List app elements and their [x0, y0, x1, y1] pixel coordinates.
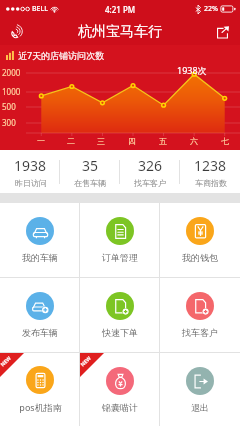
staticText: 326 [138, 156, 163, 175]
button[interactable]: Call [3, 19, 29, 45]
staticText: 三 [97, 136, 105, 146]
staticText: 1938 [14, 156, 47, 175]
staticText: 500 [2, 101, 16, 112]
staticText: 锦囊喵计 [102, 402, 138, 413]
button[interactable]: 找车客户 [160, 278, 240, 352]
button[interactable]: 发布车辆 [0, 278, 80, 352]
staticText: 我的钱包 [182, 252, 218, 263]
staticText: 订单管理 [102, 252, 138, 263]
button[interactable]: 订单管理 [80, 203, 160, 277]
staticText: 找车客户 [182, 327, 218, 338]
staticText: 找车客户 [134, 178, 166, 188]
staticText: 35 [82, 156, 99, 175]
button[interactable]: 快速下单 [80, 278, 160, 352]
staticText: 发布车辆 [22, 327, 58, 338]
staticText: 1000 [2, 86, 21, 97]
staticText: 退出 [191, 402, 209, 413]
staticText: pos机指南 [19, 401, 62, 413]
staticText: NEW [79, 355, 93, 368]
staticText: 五 [159, 136, 167, 146]
button[interactable]: 326 [120, 150, 180, 193]
button[interactable]: 1238 [180, 150, 240, 193]
staticText: 1938次 [177, 64, 207, 76]
staticText: 昨日访问 [15, 178, 47, 188]
staticText: 300 [2, 117, 16, 128]
staticText: 近7天的店铺访问次数 [18, 49, 105, 61]
staticText: 六 [190, 136, 198, 146]
staticText: NEW [0, 355, 13, 368]
staticText: 4:21 PM [105, 4, 136, 15]
staticText: 在售车辆 [74, 178, 106, 188]
staticText: 我的车辆 [22, 252, 58, 263]
staticText: 杭州宝马车行 [78, 23, 162, 41]
button[interactable]: pos机指南 [0, 353, 80, 426]
staticText: 2000 [2, 67, 21, 78]
button[interactable]: 我的钱包 [160, 203, 240, 277]
button[interactable]: 我的车辆 [0, 203, 80, 277]
staticText: 一 [37, 136, 45, 146]
staticText: 车商指数 [195, 178, 227, 188]
staticText: 四 [128, 136, 136, 146]
staticText: 二 [67, 136, 75, 146]
button[interactable]: Share [209, 19, 235, 45]
button[interactable]: 35 [60, 150, 120, 193]
staticText: 1238 [194, 156, 227, 175]
staticText: 快速下单 [102, 327, 138, 338]
staticText: 22% [204, 4, 218, 14]
staticText: 七 [221, 136, 229, 146]
staticText: BELL [32, 4, 48, 14]
button[interactable]: 退出 [160, 353, 240, 426]
button[interactable]: 1938 [0, 150, 60, 193]
button[interactable]: 锦囊喵计 [80, 353, 160, 426]
